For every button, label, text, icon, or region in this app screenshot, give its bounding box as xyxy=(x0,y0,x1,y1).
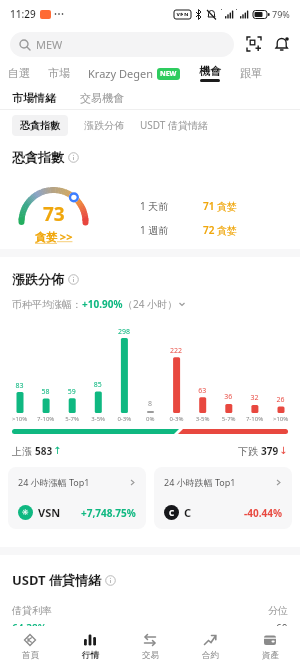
staticText: 79% xyxy=(272,8,290,20)
button[interactable]: 恐貪指數 xyxy=(12,115,68,136)
staticText: +7,748.75% xyxy=(81,506,136,520)
button[interactable] xyxy=(274,36,290,52)
staticText: ✳ xyxy=(22,508,29,517)
staticText: 合約 xyxy=(202,650,219,661)
staticText: 币种平均涨幅： xyxy=(12,298,82,311)
staticText: VSN xyxy=(38,505,61,520)
staticText: 72 貪婪 xyxy=(203,223,238,237)
staticText: 機會 xyxy=(199,64,221,78)
staticText: 首頁 xyxy=(22,650,39,661)
button[interactable]: 24 小時跌幅 Top1 xyxy=(154,467,292,529)
button[interactable]: 機會 xyxy=(199,64,221,82)
button[interactable]: 資產 xyxy=(240,626,300,666)
staticText: 1 週前 xyxy=(140,223,169,237)
button[interactable]: 自選 xyxy=(8,66,30,80)
button[interactable]: 市場情緒 xyxy=(12,91,56,105)
staticText: 恐貪指數 xyxy=(20,119,60,132)
button[interactable]: 行情 xyxy=(60,626,120,666)
staticText: 11:29 xyxy=(10,7,36,21)
staticText: USDT 借貸情緒 xyxy=(12,571,101,589)
staticText: 379 xyxy=(261,444,279,458)
staticText: 下跌 xyxy=(238,444,261,458)
staticText: 24 小時漲幅 Top1 xyxy=(18,476,90,488)
button[interactable]: 合約 xyxy=(180,626,240,666)
button[interactable]: 市場 xyxy=(48,66,70,80)
staticText: C xyxy=(169,507,175,518)
staticText: ↑ xyxy=(53,445,62,457)
staticText: 交易 xyxy=(142,650,159,661)
staticText: 60 xyxy=(276,621,288,635)
staticText: 583 xyxy=(35,444,53,458)
button[interactable]: MEW xyxy=(10,32,234,57)
staticText: 分位 xyxy=(268,604,288,617)
staticText: 恐貪指數 xyxy=(12,149,64,165)
staticText: NEW xyxy=(160,69,177,79)
button[interactable]: 24 小時漲幅 Top1 xyxy=(8,467,146,529)
staticText: 24 小時跌幅 Top1 xyxy=(164,476,236,488)
staticText: ↓ xyxy=(279,445,288,457)
staticText: 資產 xyxy=(262,650,279,661)
button[interactable]: USDT 借貸情緒 xyxy=(140,118,208,132)
button[interactable]: 交易 xyxy=(120,626,180,666)
staticText: （24 小时） xyxy=(123,297,178,311)
button[interactable]: 漲跌分佈 xyxy=(84,119,124,132)
staticText: 71 貪婪 xyxy=(203,199,238,213)
staticText: 借貸利率 xyxy=(12,604,52,617)
button[interactable]: 交易機會 xyxy=(80,91,124,105)
staticText: 64.38% xyxy=(12,621,47,635)
staticText: 73 xyxy=(43,201,65,227)
button[interactable]: Krazy Degen xyxy=(88,66,180,81)
staticText: 行情 xyxy=(82,650,99,661)
staticText: -40.44% xyxy=(244,506,282,520)
staticText: Krazy Degen xyxy=(88,66,153,81)
staticText: MEW xyxy=(36,37,63,52)
staticText: +10.90% xyxy=(82,297,123,311)
button[interactable] xyxy=(246,36,262,52)
staticText: 上漲 xyxy=(12,444,35,458)
button[interactable]: 貪婪 >> xyxy=(35,229,73,244)
staticText: C xyxy=(184,505,192,520)
staticText: 漲跌分佈 xyxy=(12,271,64,287)
button[interactable]: 跟單 xyxy=(240,66,262,80)
staticText: 1 天前 xyxy=(140,199,169,213)
button[interactable]: 首頁 xyxy=(0,626,60,666)
